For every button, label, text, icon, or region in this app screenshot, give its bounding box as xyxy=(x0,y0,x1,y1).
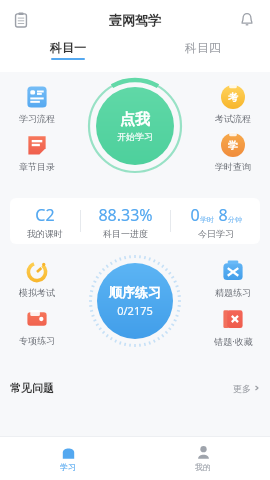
button[interactable]: Records xyxy=(8,7,34,33)
button[interactable]: 点我 xyxy=(87,78,183,174)
staticText: 常见问题 xyxy=(10,381,54,395)
staticText: 专项练习 xyxy=(19,335,55,346)
staticText: 科目四 xyxy=(185,40,221,55)
staticText: 开始学习 xyxy=(117,131,153,142)
staticText: 88.33% xyxy=(98,204,153,226)
button[interactable]: 我的 xyxy=(135,436,270,480)
staticText: 点我 xyxy=(120,110,150,129)
staticText: 壹网驾学 xyxy=(109,12,161,28)
button[interactable]: 专项练习 xyxy=(8,304,66,348)
staticText: C2 xyxy=(35,204,55,226)
staticText: 科目一进度 xyxy=(103,228,148,239)
staticText: 更多 xyxy=(233,383,251,394)
staticText: 我的 xyxy=(195,462,211,472)
button[interactable]: 错题·收藏 xyxy=(204,304,262,349)
button[interactable]: 科目一 xyxy=(0,40,135,60)
button[interactable]: 考 xyxy=(204,82,262,126)
button[interactable]: Notifications xyxy=(234,7,260,33)
staticText: 分钟 xyxy=(228,215,242,224)
button[interactable]: 模拟考试 xyxy=(8,256,66,300)
staticText: 科目一 xyxy=(50,40,86,55)
button[interactable]: 章节目录 xyxy=(8,130,66,174)
button[interactable]: 精题练习 xyxy=(204,256,262,300)
staticText: 0/2175 xyxy=(117,303,153,318)
staticText: 学习 xyxy=(60,462,76,472)
button[interactable]: 0 xyxy=(171,204,260,239)
staticText: 模拟考试 xyxy=(19,287,55,298)
button[interactable]: 学习 xyxy=(0,436,135,480)
staticText: 精题练习 xyxy=(215,287,251,298)
button[interactable]: 顺序练习 xyxy=(88,254,182,348)
button[interactable]: 常见问题 xyxy=(0,374,270,402)
staticText: 0 xyxy=(190,204,200,226)
staticText: 学时查询 xyxy=(215,161,251,172)
staticText: 顺序练习 xyxy=(109,284,161,300)
staticText: 8 xyxy=(218,204,228,226)
staticText: 考 xyxy=(228,91,238,104)
staticText: 章节目录 xyxy=(19,161,55,172)
button[interactable]: 88.33% xyxy=(81,204,170,239)
button[interactable]: 科目四 xyxy=(135,40,270,60)
staticText: 学时 xyxy=(200,215,214,224)
button[interactable]: C2 xyxy=(10,204,80,239)
staticText: 学习流程 xyxy=(19,113,55,124)
staticText: 今日学习 xyxy=(198,228,234,239)
staticText: 考试流程 xyxy=(215,113,251,124)
staticText: 学 xyxy=(228,139,238,152)
button[interactable]: 学习流程 xyxy=(8,82,66,126)
button[interactable]: 学 xyxy=(204,130,262,174)
staticText: 错题·收藏 xyxy=(214,335,253,347)
staticText: 我的课时 xyxy=(27,228,63,239)
